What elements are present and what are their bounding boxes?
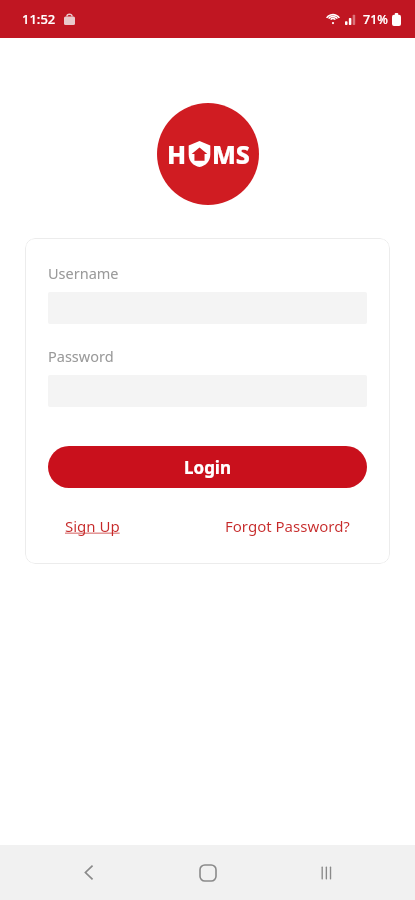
staticText: 71%: [363, 11, 388, 28]
button[interactable]: Back: [60, 845, 118, 900]
button[interactable]: Recent apps: [297, 845, 355, 900]
button[interactable]: Forgot Password?: [223, 514, 352, 538]
staticText: MS: [212, 137, 250, 171]
button[interactable]: Sign Up: [63, 514, 122, 538]
staticText: Password: [48, 346, 114, 366]
button[interactable]: Home: [179, 845, 237, 900]
staticText: 11:52: [22, 10, 56, 28]
staticText: H: [167, 137, 187, 171]
staticText: Username: [48, 263, 119, 283]
staticText: Forgot Password?: [225, 516, 350, 536]
staticText: Login: [184, 456, 232, 479]
button[interactable]: Login: [48, 446, 367, 488]
staticText: Sign Up: [65, 516, 120, 536]
